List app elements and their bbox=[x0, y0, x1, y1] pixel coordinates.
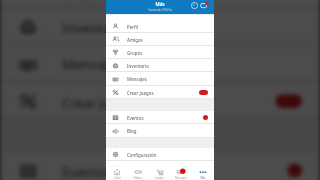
button[interactable]: Eventos bbox=[0, 152, 320, 180]
button[interactable]: Buscar bbox=[191, 2, 198, 9]
staticText: Grupos bbox=[127, 50, 143, 56]
staticText: Videos bbox=[133, 176, 142, 180]
button[interactable]: Eventos bbox=[106, 111, 214, 124]
staticText: Conectado 10:04 hs bbox=[148, 8, 172, 12]
staticText: Más bbox=[155, 1, 165, 7]
staticText: Juegos bbox=[155, 176, 164, 180]
button[interactable]: Games bbox=[148, 166, 170, 180]
button[interactable]: Notificaciones bbox=[200, 1, 209, 10]
staticText: Mensajes bbox=[175, 176, 187, 180]
button[interactable]: Inventario bbox=[106, 59, 214, 72]
button[interactable]: Messages bbox=[170, 166, 192, 180]
button[interactable]: Videos bbox=[127, 166, 148, 180]
staticText: Eventos bbox=[127, 115, 144, 121]
staticText: Configuración bbox=[127, 152, 157, 158]
button[interactable]: Ayuda bbox=[106, 161, 214, 174]
staticText: Blog bbox=[127, 128, 137, 134]
staticText: Ayuda bbox=[127, 165, 141, 171]
button[interactable]: Amigos bbox=[106, 33, 214, 46]
staticText: Inventario bbox=[62, 19, 127, 36]
button[interactable]: Mensajes bbox=[0, 44, 320, 83]
staticText: Mensajes bbox=[127, 76, 147, 82]
staticText: Mensajes bbox=[62, 55, 121, 72]
button[interactable]: Blog bbox=[106, 124, 214, 138]
button[interactable]: Crear juegos bbox=[106, 86, 214, 99]
button[interactable]: Crear juegos bbox=[0, 83, 320, 119]
button[interactable]: Inventario bbox=[0, 8, 320, 44]
staticText: Más bbox=[200, 176, 206, 180]
button[interactable]: More bbox=[192, 166, 214, 180]
staticText: Crear juegos bbox=[127, 90, 154, 96]
button[interactable]: Perfil bbox=[106, 20, 214, 33]
button[interactable]: Configuración bbox=[106, 148, 214, 161]
staticText: Crear juegos bbox=[62, 94, 142, 111]
button[interactable]: Home bbox=[106, 166, 127, 180]
staticText: Inicio bbox=[114, 176, 121, 180]
button[interactable]: Mensajes bbox=[106, 72, 214, 86]
staticText: Inventario bbox=[127, 63, 149, 69]
button[interactable]: Grupos bbox=[0, 0, 320, 8]
staticText: Eventos bbox=[62, 163, 113, 180]
staticText: Perfil bbox=[127, 24, 138, 30]
staticText: Amigos bbox=[127, 37, 143, 43]
button[interactable]: Grupos bbox=[106, 46, 214, 59]
